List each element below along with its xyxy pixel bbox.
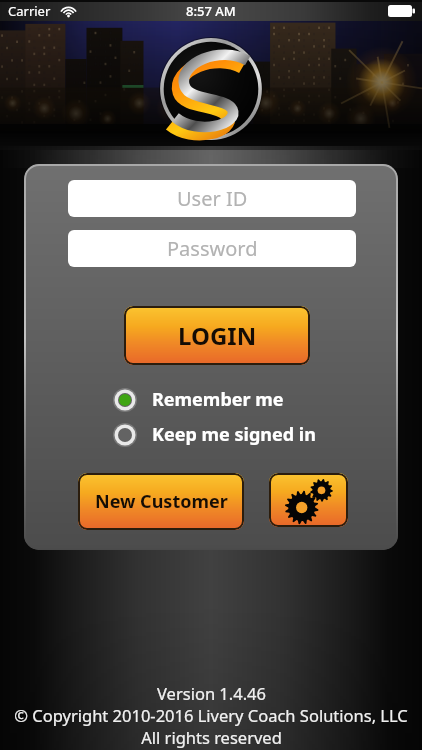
staticText: All rights reserved	[141, 726, 282, 748]
button[interactable]: Keep me signed in	[113, 422, 316, 447]
staticText: Carrier	[8, 2, 51, 20]
button[interactable]: New Customer	[78, 473, 244, 530]
staticText: Version 1.4.46	[157, 682, 266, 704]
staticText: Keep me signed in	[152, 422, 316, 447]
staticText: User ID	[177, 185, 248, 212]
button[interactable]: User ID	[68, 180, 356, 217]
staticText: Password	[167, 235, 258, 262]
button[interactable]: LOGIN	[124, 306, 310, 365]
staticText: LOGIN	[178, 319, 257, 352]
staticText: © Copyright 2010-2016 Livery Coach Solut…	[14, 704, 408, 726]
staticText: New Customer	[95, 489, 228, 514]
staticText: Remember me	[152, 387, 284, 412]
staticText: 8:57 AM	[186, 2, 236, 20]
button[interactable]: Password	[68, 230, 356, 267]
button[interactable]: Settings	[269, 473, 348, 527]
button[interactable]: Remember me	[113, 387, 284, 412]
